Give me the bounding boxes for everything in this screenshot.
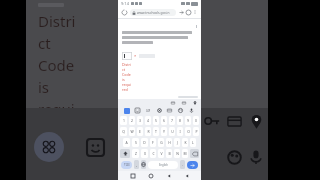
button[interactable]: W [129, 127, 135, 136]
button[interactable]: U [169, 127, 175, 136]
button[interactable]: Comma [134, 160, 139, 169]
button[interactable]: 4 [145, 116, 151, 125]
button[interactable]: P [193, 127, 199, 136]
staticText: P [195, 129, 198, 134]
staticText: S [135, 140, 137, 145]
staticText: Y [163, 129, 165, 134]
button[interactable]: O [185, 127, 191, 136]
button[interactable]: L [190, 138, 196, 147]
staticText: www.tnschools.gov.in [137, 11, 170, 15]
button[interactable]: Keyboard [124, 108, 130, 114]
button[interactable]: Backspace [190, 149, 199, 158]
button[interactable]: Shift [120, 149, 130, 158]
button[interactable]: Themes [223, 146, 245, 168]
button[interactable]: Period [180, 160, 185, 169]
button[interactable]: Y [161, 127, 167, 136]
button[interactable]: Go [178, 9, 185, 16]
staticText: U [171, 129, 174, 134]
button[interactable]: T [153, 127, 159, 136]
button[interactable]: Account [185, 9, 192, 16]
staticText: requi [38, 99, 75, 119]
button[interactable]: Location [245, 110, 267, 132]
button[interactable]: Home [147, 172, 154, 179]
button[interactable]: B [166, 149, 172, 158]
button[interactable]: R [145, 127, 151, 136]
staticText: GIF [146, 109, 151, 113]
staticText: ?123 [124, 163, 130, 167]
button[interactable]: 3 [137, 116, 143, 125]
staticText: D [143, 140, 146, 145]
staticText: 3 [139, 118, 141, 123]
staticText: Z [135, 151, 137, 156]
button[interactable]: Settings [156, 107, 163, 114]
button[interactable]: D [141, 138, 148, 147]
button[interactable]: V [158, 149, 164, 158]
button[interactable]: Language [141, 160, 146, 169]
button[interactable]: K [182, 138, 188, 147]
staticText: Q [122, 129, 125, 134]
button[interactable]: Reload [121, 9, 128, 16]
button[interactable]: Stickers [82, 134, 108, 160]
button[interactable]: Q [120, 127, 127, 136]
button[interactable]: 5 [153, 116, 159, 125]
staticText: 5 [155, 118, 157, 123]
button[interactable]: Space [148, 161, 178, 169]
button[interactable]: 7 [169, 116, 175, 125]
button[interactable]: Apps [34, 132, 64, 162]
button[interactable]: 9 [185, 116, 191, 125]
button[interactable]: www.tnschools.gov.in [130, 9, 176, 16]
staticText: requi [122, 82, 131, 87]
button[interactable]: J [174, 138, 180, 147]
button[interactable]: N [174, 149, 180, 158]
button[interactable]: Back [165, 172, 172, 179]
staticText: M [183, 151, 187, 156]
staticText: is [122, 77, 125, 82]
button[interactable]: Translate [166, 107, 173, 114]
button[interactable]: Symbols [121, 161, 132, 169]
button[interactable]: Themes [177, 107, 184, 114]
button[interactable]: S [132, 138, 139, 147]
button[interactable]: Passwords [201, 110, 223, 132]
staticText: red [122, 87, 128, 92]
staticText: B [168, 151, 171, 156]
staticText: A [125, 140, 128, 145]
button[interactable]: I [177, 127, 183, 136]
button[interactable]: Payments [223, 110, 245, 132]
staticText: 8 [179, 118, 181, 123]
button[interactable]: A [123, 138, 130, 147]
staticText: 4 [147, 118, 149, 123]
button[interactable]: M [182, 149, 188, 158]
staticText: ct [38, 33, 51, 53]
button[interactable]: 6 [161, 116, 167, 125]
button[interactable] [122, 52, 132, 60]
button[interactable]: 0 [193, 116, 199, 125]
button[interactable]: Enter [187, 161, 198, 169]
button[interactable]: F [150, 138, 156, 147]
button[interactable]: E [137, 127, 143, 136]
staticText: T [155, 129, 157, 134]
button[interactable]: H [166, 138, 172, 147]
button[interactable]: 2 [129, 116, 135, 125]
staticText: V [160, 151, 163, 156]
button[interactable]: Location [191, 99, 198, 106]
button[interactable]: Z [132, 149, 139, 158]
staticText: Distri [122, 62, 131, 67]
button[interactable]: More options [192, 9, 198, 15]
button[interactable]: 8 [177, 116, 183, 125]
button[interactable]: Stickers [134, 107, 141, 114]
staticText: 2 [131, 118, 133, 123]
button[interactable]: Recents [129, 172, 136, 179]
button[interactable]: X [141, 149, 148, 158]
button[interactable]: C [150, 149, 156, 158]
button[interactable]: Voice input [245, 146, 267, 168]
staticText: F [152, 140, 154, 145]
staticText: C [152, 151, 155, 156]
button[interactable]: G [158, 138, 164, 147]
button[interactable]: Voice input [188, 107, 195, 114]
button[interactable]: Payments [180, 99, 187, 106]
button[interactable]: Dismiss keyboard [183, 172, 190, 179]
button[interactable]: GIF [145, 107, 152, 114]
staticText: 9:14 [121, 1, 129, 6]
button[interactable]: 1 [120, 116, 127, 125]
button[interactable]: Clipboard [169, 99, 176, 106]
